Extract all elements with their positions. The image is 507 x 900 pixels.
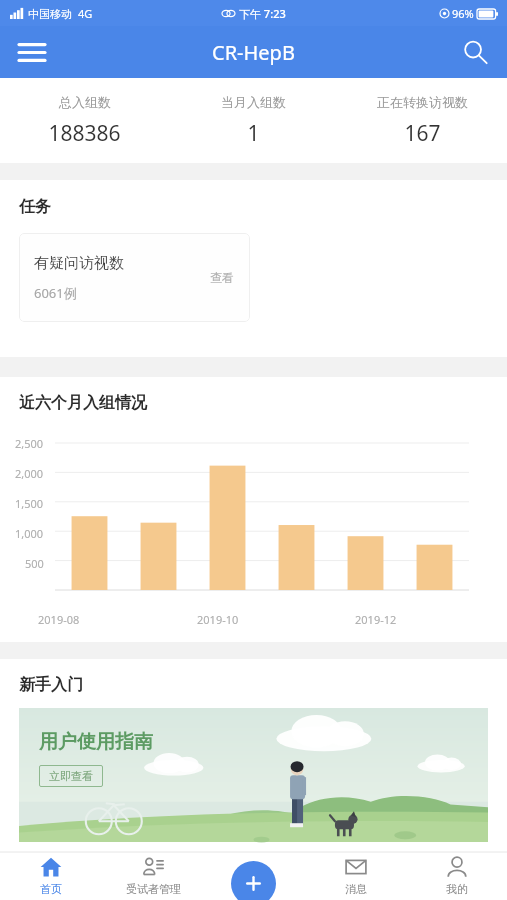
button[interactable]: 受试者管理 (102, 852, 204, 900)
staticText: CR-HepB (212, 39, 295, 66)
button[interactable]: 有疑问访视数 (19, 233, 250, 322)
staticText: 2019-12 (355, 612, 397, 627)
staticText: 用户使用指南 (39, 730, 153, 754)
staticText: 188386 (48, 119, 121, 148)
staticText: 立即查看 (49, 769, 93, 783)
staticText: 1,000 (15, 526, 44, 541)
staticText: 中国移动 (28, 7, 72, 21)
staticText: 正在转换访视数 (377, 94, 468, 110)
staticText: 查看 (210, 270, 234, 285)
button[interactable]: 我的 (406, 852, 507, 900)
button[interactable]: 正在转换访视数 (338, 94, 507, 148)
staticText: 新手入门 (19, 675, 83, 695)
staticText: 1 (247, 119, 260, 148)
staticText: 总入组数 (59, 94, 111, 110)
staticText: 2019-10 (197, 612, 239, 627)
staticText: 500 (25, 556, 44, 571)
button[interactable]: 用户使用指南 (19, 708, 488, 842)
button[interactable]: 消息 (305, 852, 406, 900)
staticText: 当月入组数 (221, 94, 286, 110)
staticText: 167 (404, 119, 441, 148)
staticText: 2019-08 (38, 612, 80, 627)
staticText: 4G (78, 6, 93, 21)
staticText: 消息 (345, 882, 367, 896)
staticText: 我的 (446, 882, 468, 896)
staticText: 96% (452, 6, 474, 21)
staticText: 2,500 (15, 436, 44, 451)
staticText: 6061例 (34, 284, 77, 302)
button[interactable]: 当月入组数 (169, 94, 338, 148)
staticText: 首页 (40, 882, 62, 896)
staticText: 下午 7:23 (239, 6, 286, 21)
staticText: 有疑问访视数 (34, 254, 124, 273)
staticText: 1,500 (15, 496, 44, 511)
staticText: 任务 (19, 197, 51, 217)
button[interactable]: 总入组数 (0, 94, 169, 148)
button[interactable]: Search (453, 30, 497, 74)
staticText: 受试者管理 (126, 882, 181, 896)
button[interactable]: 首页 (0, 852, 102, 900)
staticText: 2,000 (15, 466, 44, 481)
button[interactable]: Menu (8, 28, 56, 76)
button[interactable]: Add (231, 861, 276, 900)
staticText: 近六个月入组情况 (19, 393, 147, 413)
